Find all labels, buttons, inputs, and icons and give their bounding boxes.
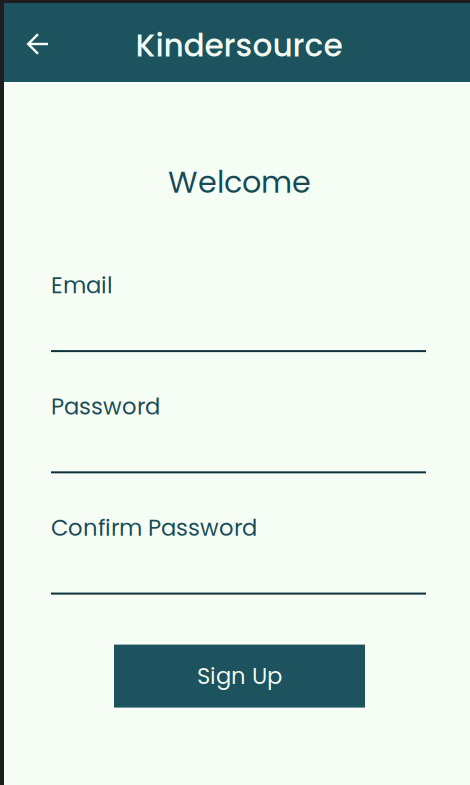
staticText: Confirm Password (51, 512, 257, 543)
button[interactable]: Email (51, 269, 426, 352)
staticText: Welcome (168, 161, 311, 203)
button[interactable]: Sign Up (114, 645, 365, 708)
staticText: Sign Up (197, 660, 282, 692)
button[interactable]: Password (51, 391, 426, 473)
staticText: Kindersource (135, 24, 342, 67)
staticText: Email (51, 269, 113, 301)
button[interactable]: Confirm Password (51, 512, 426, 594)
staticText: Password (51, 391, 160, 422)
button[interactable]: Back (16, 22, 60, 66)
